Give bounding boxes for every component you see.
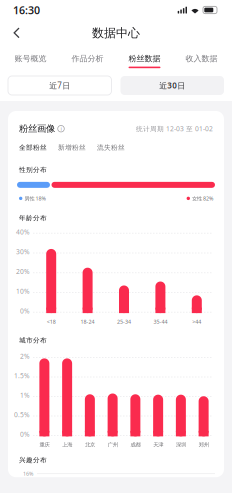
staticText: 重庆: [39, 441, 49, 448]
staticText: 40%: [16, 227, 30, 236]
staticText: 10%: [16, 287, 30, 296]
staticText: 深圳: [176, 441, 186, 448]
staticText: 广州: [108, 441, 118, 448]
staticText: 天津: [153, 441, 163, 448]
button[interactable]: 流失粉丝: [97, 143, 125, 152]
button[interactable]: Back: [8, 21, 26, 45]
staticText: 上海: [62, 441, 72, 448]
staticText: 35-44: [153, 318, 167, 325]
staticText: 全部粉丝: [19, 143, 47, 152]
staticText: 新增粉丝: [58, 143, 86, 152]
staticText: 兴趣分布: [19, 456, 47, 464]
staticText: 统计周期 12-03 至 01-02: [136, 124, 213, 133]
staticText: 0%: [20, 306, 30, 315]
staticText: 25-34: [117, 318, 131, 325]
staticText: 北京: [85, 441, 95, 448]
staticText: 郑州: [199, 441, 209, 448]
staticText: 作品分析: [71, 54, 103, 64]
staticText: 流失粉丝: [97, 143, 125, 152]
staticText: 20%: [16, 267, 30, 276]
staticText: 收入数据: [185, 54, 217, 64]
staticText: 18-24: [81, 318, 95, 325]
staticText: 性别分布: [19, 166, 47, 174]
staticText: 近30日: [159, 80, 185, 91]
button[interactable]: 收入数据: [173, 48, 230, 70]
staticText: <18: [47, 318, 56, 325]
staticText: 账号概览: [14, 54, 46, 64]
button[interactable]: 粉丝数据: [116, 48, 173, 70]
staticText: 城市分布: [19, 336, 47, 344]
staticText: >44: [192, 318, 201, 325]
staticText: 1.5%: [14, 371, 30, 380]
staticText: 粉丝数据: [128, 54, 160, 64]
staticText: i: [60, 125, 61, 132]
staticText: 16%: [23, 470, 33, 477]
staticText: 30%: [16, 247, 30, 256]
staticText: 16:30: [13, 3, 40, 17]
button[interactable]: 全部粉丝: [19, 143, 47, 152]
button[interactable]: 新增粉丝: [58, 143, 86, 152]
staticText: 粉丝画像: [19, 123, 55, 134]
button[interactable]: 账号概览: [2, 48, 59, 70]
staticText: 0%: [20, 430, 30, 439]
staticText: 近7日: [49, 80, 70, 91]
button[interactable]: 近30日: [120, 76, 224, 95]
staticText: 男性 18%: [24, 195, 45, 202]
button[interactable]: 说明: [55, 124, 66, 134]
staticText: 2%: [20, 352, 30, 361]
staticText: 女性 82%: [192, 195, 213, 202]
button[interactable]: 作品分析: [59, 48, 116, 70]
staticText: 数据中心: [92, 26, 140, 40]
staticText: 1%: [20, 391, 30, 400]
staticText: 成都: [130, 441, 140, 448]
button[interactable]: 近7日: [8, 76, 111, 95]
staticText: 0.5%: [14, 410, 30, 419]
staticText: 年龄分布: [19, 214, 47, 222]
